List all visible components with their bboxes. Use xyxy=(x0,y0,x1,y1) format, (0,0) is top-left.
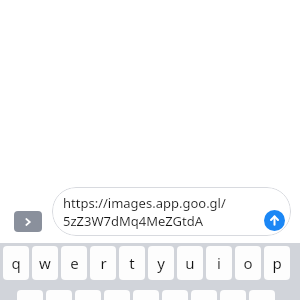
button[interactable]: l xyxy=(249,290,275,300)
button[interactable]: i xyxy=(206,246,232,280)
staticText: r xyxy=(100,253,107,273)
button[interactable]: s xyxy=(46,290,72,300)
button[interactable]: Show apps xyxy=(14,211,42,232)
button[interactable]: u xyxy=(177,246,203,280)
button[interactable]: d xyxy=(75,290,101,300)
button[interactable]: a xyxy=(17,290,43,300)
staticText: i xyxy=(217,253,221,273)
button[interactable]: p xyxy=(264,246,290,280)
staticText: https://images.app.goo.gl/ xyxy=(63,194,226,212)
button[interactable]: g xyxy=(133,290,159,300)
staticText: p xyxy=(272,253,282,273)
button[interactable]: f xyxy=(104,290,130,300)
staticText: u xyxy=(185,253,195,273)
staticText: o xyxy=(243,253,253,273)
button[interactable]: y xyxy=(148,246,174,280)
staticText: w xyxy=(39,253,51,273)
button[interactable]: j xyxy=(191,290,217,300)
button[interactable]: t xyxy=(119,246,145,280)
staticText: t xyxy=(129,253,135,273)
button[interactable]: h xyxy=(162,290,188,300)
button[interactable]: k xyxy=(220,290,246,300)
button[interactable]: e xyxy=(61,246,87,280)
button[interactable]: q xyxy=(3,246,29,280)
staticText: 5zZ3W7dMq4MeZGtdA xyxy=(63,212,204,230)
button[interactable]: w xyxy=(32,246,58,280)
staticText: e xyxy=(70,253,79,273)
staticText: y xyxy=(157,253,165,273)
button[interactable]: Send xyxy=(264,210,285,231)
button[interactable]: o xyxy=(235,246,261,280)
staticText: q xyxy=(11,253,21,273)
button[interactable]: r xyxy=(90,246,116,280)
button[interactable]: https://images.app.goo.gl/ xyxy=(52,187,291,236)
